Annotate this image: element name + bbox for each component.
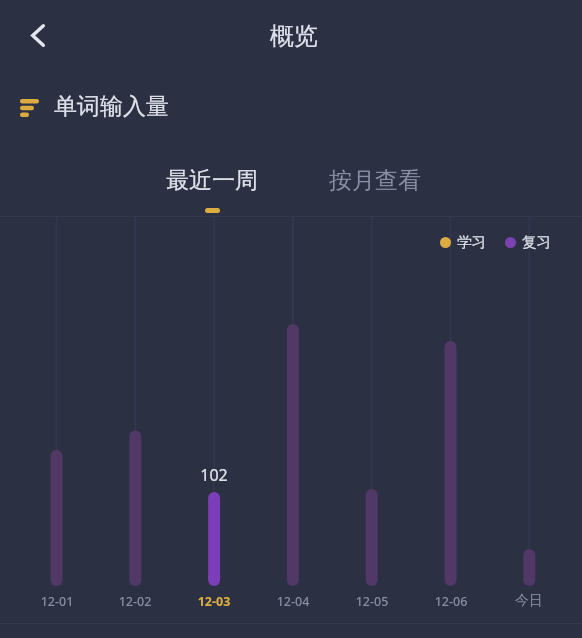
button[interactable]: Back: [14, 11, 64, 61]
staticText: 按月查看: [329, 166, 421, 195]
button[interactable]: 12-05: [333, 250, 411, 610]
staticText: 最近一周: [166, 166, 258, 195]
staticText: 12-06: [401, 593, 501, 610]
staticText: 12-03: [164, 593, 264, 610]
button[interactable]: 12-01: [18, 250, 96, 610]
staticText: 12-04: [243, 593, 343, 610]
button[interactable]: 单词输入量: [18, 87, 169, 125]
button[interactable]: 12-02: [96, 250, 174, 610]
staticText: 学习: [457, 233, 486, 251]
staticText: 复习: [522, 233, 551, 251]
button[interactable]: 今日: [490, 250, 568, 610]
staticText: 概览: [270, 21, 318, 51]
button[interactable]: 12-03: [175, 250, 253, 610]
button[interactable]: 按月查看: [313, 158, 437, 216]
staticText: 单词输入量: [54, 92, 169, 121]
staticText: 12-05: [322, 593, 422, 610]
staticText: 今日: [479, 592, 579, 610]
staticText: 12-01: [7, 593, 107, 610]
staticText: 12-02: [85, 593, 185, 610]
staticText: 102: [164, 464, 264, 486]
button[interactable]: 最近一周: [150, 158, 274, 216]
button[interactable]: 12-04: [254, 250, 332, 610]
button[interactable]: 12-06: [412, 250, 490, 610]
